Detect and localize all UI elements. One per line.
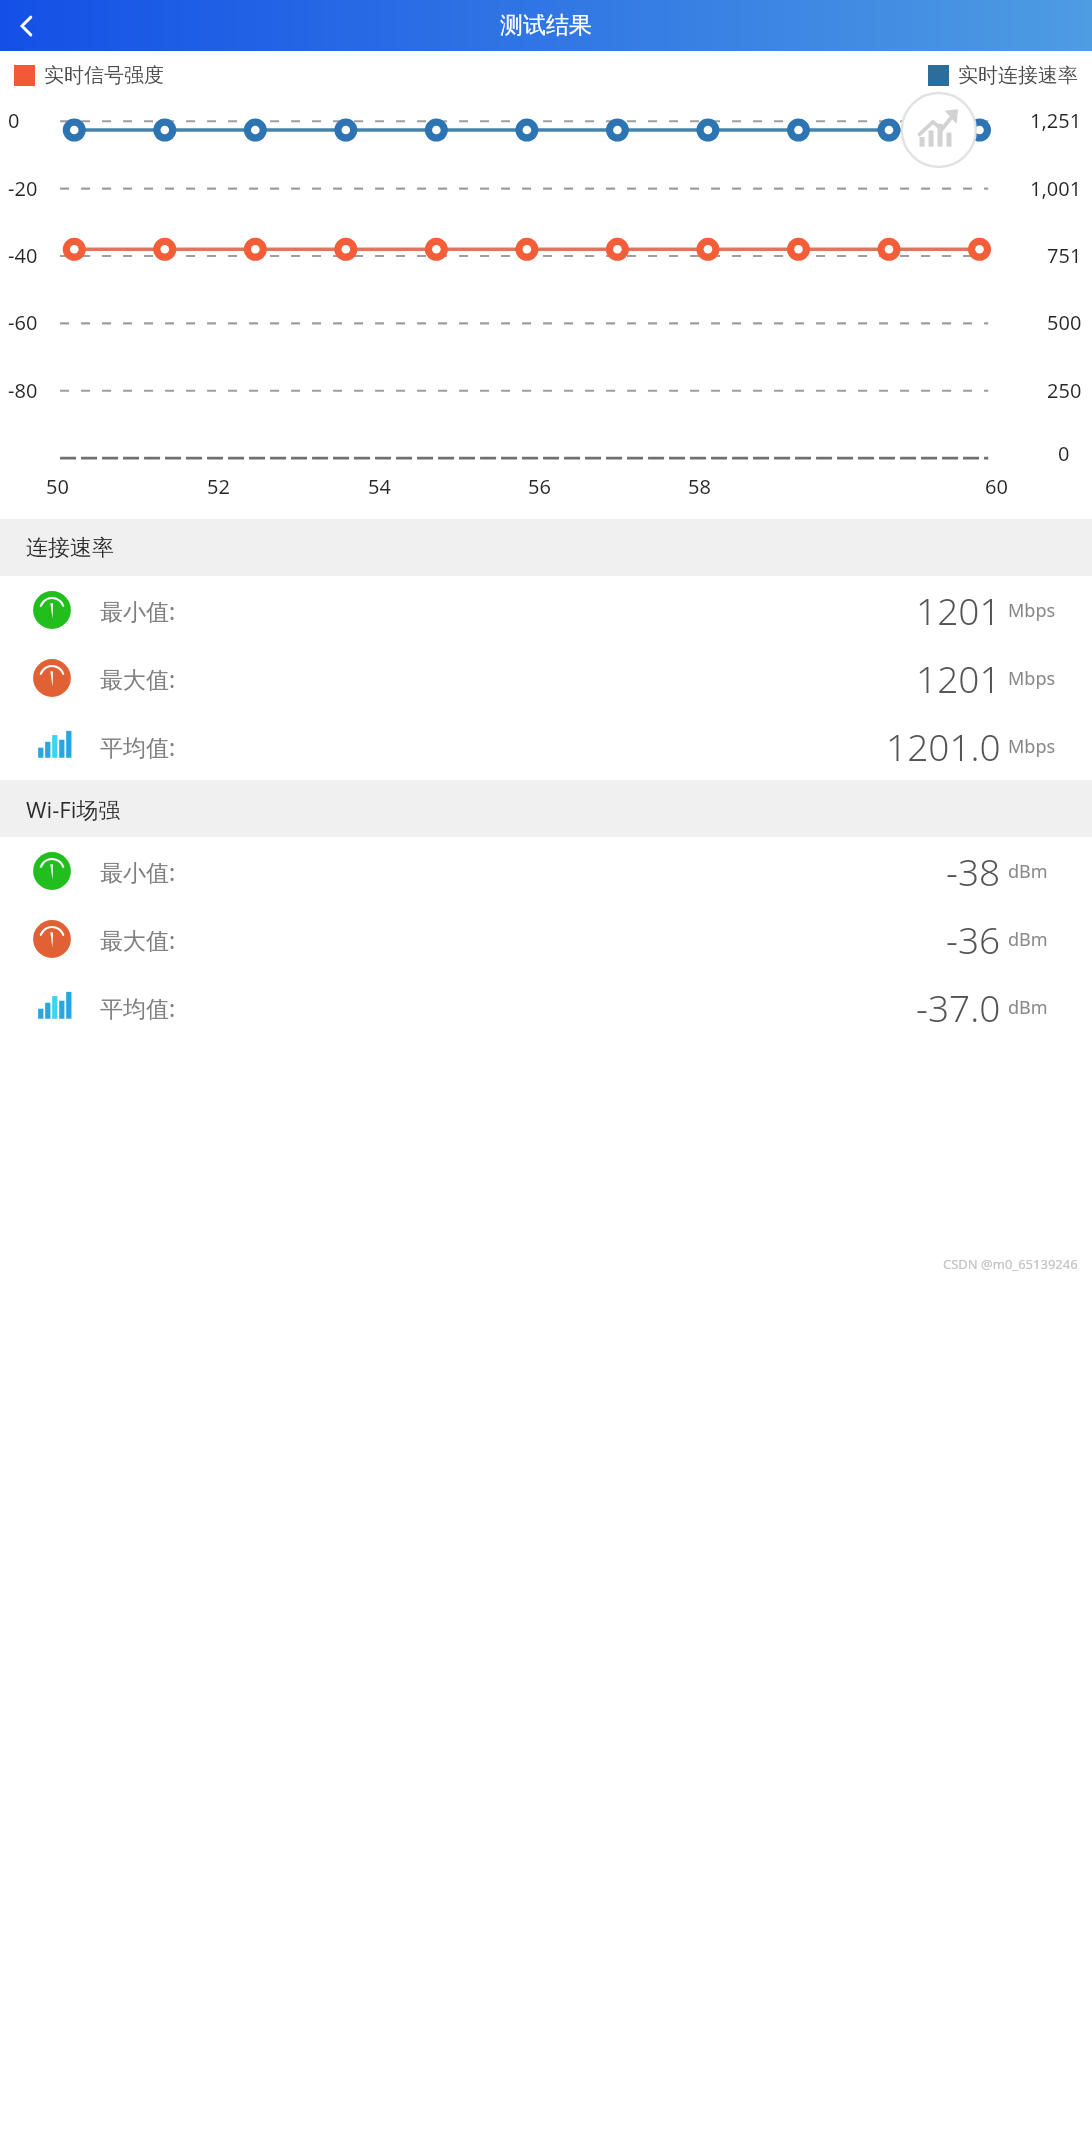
staticText: 1201 bbox=[916, 653, 1001, 703]
staticText: 250 bbox=[1047, 377, 1082, 404]
staticText: 实时连接速率 bbox=[958, 63, 1078, 88]
staticText: 751 bbox=[1047, 242, 1082, 269]
button[interactable]: Back bbox=[4, 3, 50, 49]
staticText: -36 bbox=[946, 914, 1001, 964]
button[interactable]: 最小值: bbox=[0, 837, 1092, 905]
staticText: dBm bbox=[1008, 995, 1048, 1020]
staticText: 0 bbox=[1058, 440, 1070, 467]
staticText: 平均值: bbox=[100, 731, 176, 762]
staticText: Mbps bbox=[1008, 666, 1056, 691]
staticText: 500 bbox=[1047, 309, 1082, 336]
staticText: 实时信号强度 bbox=[44, 63, 164, 88]
staticText: Mbps bbox=[1008, 598, 1056, 623]
staticText: Mbps bbox=[1008, 734, 1056, 759]
button[interactable]: 平均值: bbox=[0, 712, 1092, 780]
staticText: 最小值: bbox=[100, 595, 176, 626]
staticText: -37.0 bbox=[916, 982, 1001, 1032]
staticText: dBm bbox=[1008, 927, 1048, 952]
staticText: 连接速率 bbox=[26, 534, 114, 562]
staticText: 52 bbox=[207, 473, 230, 500]
staticText: -38 bbox=[946, 846, 1001, 896]
staticText: 50 bbox=[46, 473, 69, 500]
staticText: CSDN @m0_65139246 bbox=[943, 1255, 1078, 1273]
staticText: 0 bbox=[8, 107, 20, 134]
staticText: 54 bbox=[368, 473, 391, 500]
staticText: 最大值: bbox=[100, 663, 176, 694]
button[interactable]: 最大值: bbox=[0, 644, 1092, 712]
staticText: 58 bbox=[688, 473, 711, 500]
staticText: 1201 bbox=[916, 585, 1001, 635]
staticText: Wi-Fi场强 bbox=[26, 794, 121, 824]
button[interactable]: 最大值: bbox=[0, 905, 1092, 973]
staticText: 最小值: bbox=[100, 856, 176, 887]
staticText: -80 bbox=[8, 377, 38, 404]
staticText: 1,001 bbox=[1030, 175, 1082, 202]
staticText: 60 bbox=[985, 473, 1008, 500]
staticText: -60 bbox=[8, 309, 38, 336]
button[interactable]: 最小值: bbox=[0, 576, 1092, 644]
staticText: 测试结果 bbox=[500, 11, 592, 40]
staticText: -40 bbox=[8, 242, 38, 269]
staticText: 56 bbox=[528, 473, 551, 500]
staticText: 1201.0 bbox=[886, 721, 1001, 771]
staticText: -20 bbox=[8, 175, 38, 202]
button[interactable]: 平均值: bbox=[0, 973, 1092, 1041]
staticText: 1,251 bbox=[1030, 107, 1082, 134]
staticText: dBm bbox=[1008, 859, 1048, 884]
staticText: 最大值: bbox=[100, 924, 176, 955]
staticText: 平均值: bbox=[100, 992, 176, 1023]
